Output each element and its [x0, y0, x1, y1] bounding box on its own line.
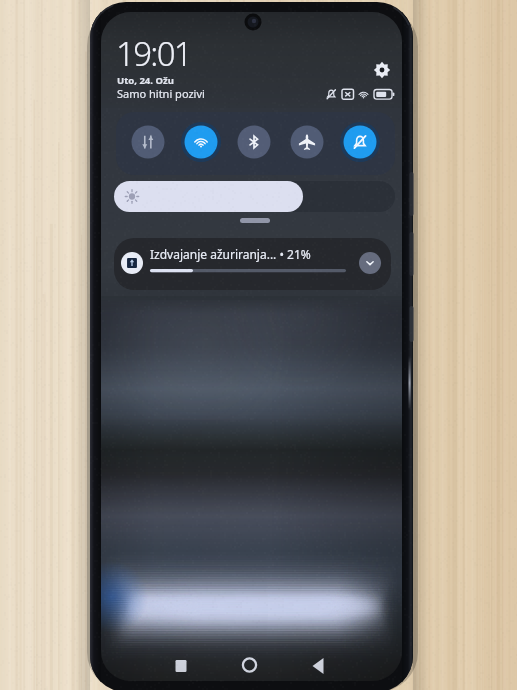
button[interactable]: Settings	[370, 58, 394, 82]
button[interactable]: Bluetooth	[239, 127, 272, 160]
button[interactable]: Back	[305, 648, 337, 680]
button[interactable]: Brightness	[115, 180, 394, 211]
staticText: Samo hitni pozivi	[117, 86, 205, 101]
button[interactable]: Expand notification	[362, 252, 386, 276]
button[interactable]: Wi-Fi	[186, 127, 219, 160]
staticText: Uto, 24. Ožu	[117, 74, 174, 87]
button[interactable]: Recent apps	[168, 648, 200, 680]
button[interactable]	[116, 238, 394, 290]
button[interactable]: Silent mode	[346, 127, 379, 160]
staticText: 19:01	[116, 31, 191, 76]
button[interactable]: Airplane mode	[293, 127, 326, 160]
button[interactable]: Mobile data	[132, 127, 165, 160]
staticText: Izdvajanje ažuriranja... • 21%	[150, 246, 311, 262]
button[interactable]: Home	[237, 648, 269, 680]
